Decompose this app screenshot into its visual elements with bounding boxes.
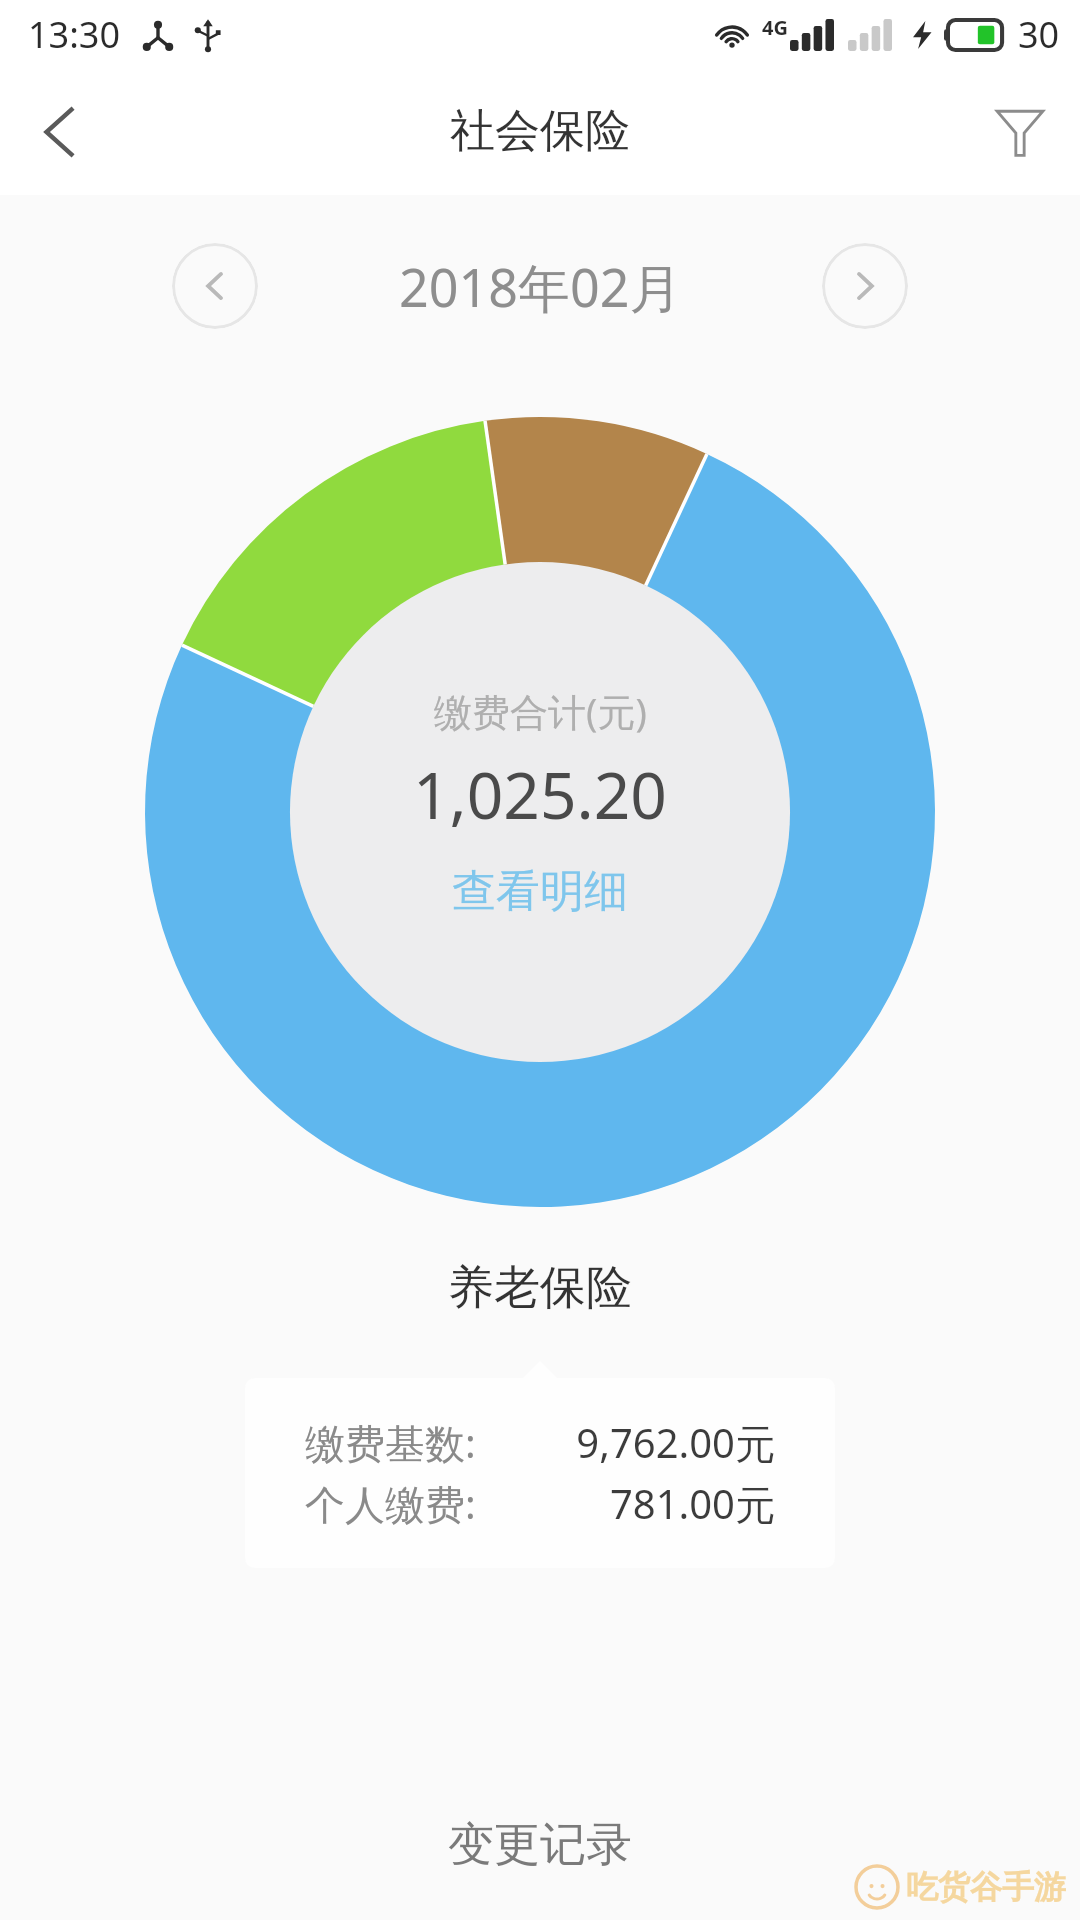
staticText: 缴费基数: <box>305 1415 505 1470</box>
staticText: 1,025.20 <box>413 751 667 838</box>
button[interactable]: Previous month <box>172 243 258 329</box>
button[interactable]: Next month <box>822 243 908 329</box>
button[interactable]: Back <box>0 72 120 192</box>
staticText: 2018年02月 <box>399 251 682 322</box>
staticText: 781.00元 <box>525 1476 775 1531</box>
button[interactable]: 缴费基数: <box>245 1378 835 1568</box>
staticText: 个人缴费: <box>305 1476 505 1531</box>
button[interactable]: Filter <box>960 72 1080 192</box>
staticText: 4G <box>762 14 788 41</box>
staticText: 9,762.00元 <box>525 1415 775 1470</box>
staticText: 变更记录 <box>448 1816 632 1874</box>
staticText: 养老保险 <box>448 1259 632 1317</box>
staticText: 13:30 <box>28 10 121 59</box>
staticText: 查看明细 <box>452 864 628 919</box>
staticText: 吃货谷手游 <box>906 1867 1066 1907</box>
staticText: 30 <box>1018 10 1060 59</box>
staticText: 缴费合计(元) <box>434 685 647 737</box>
staticText: 社会保险 <box>450 103 630 160</box>
button[interactable]: 变更记录 <box>0 1770 1080 1920</box>
button[interactable]: 查看明细 <box>442 860 638 923</box>
